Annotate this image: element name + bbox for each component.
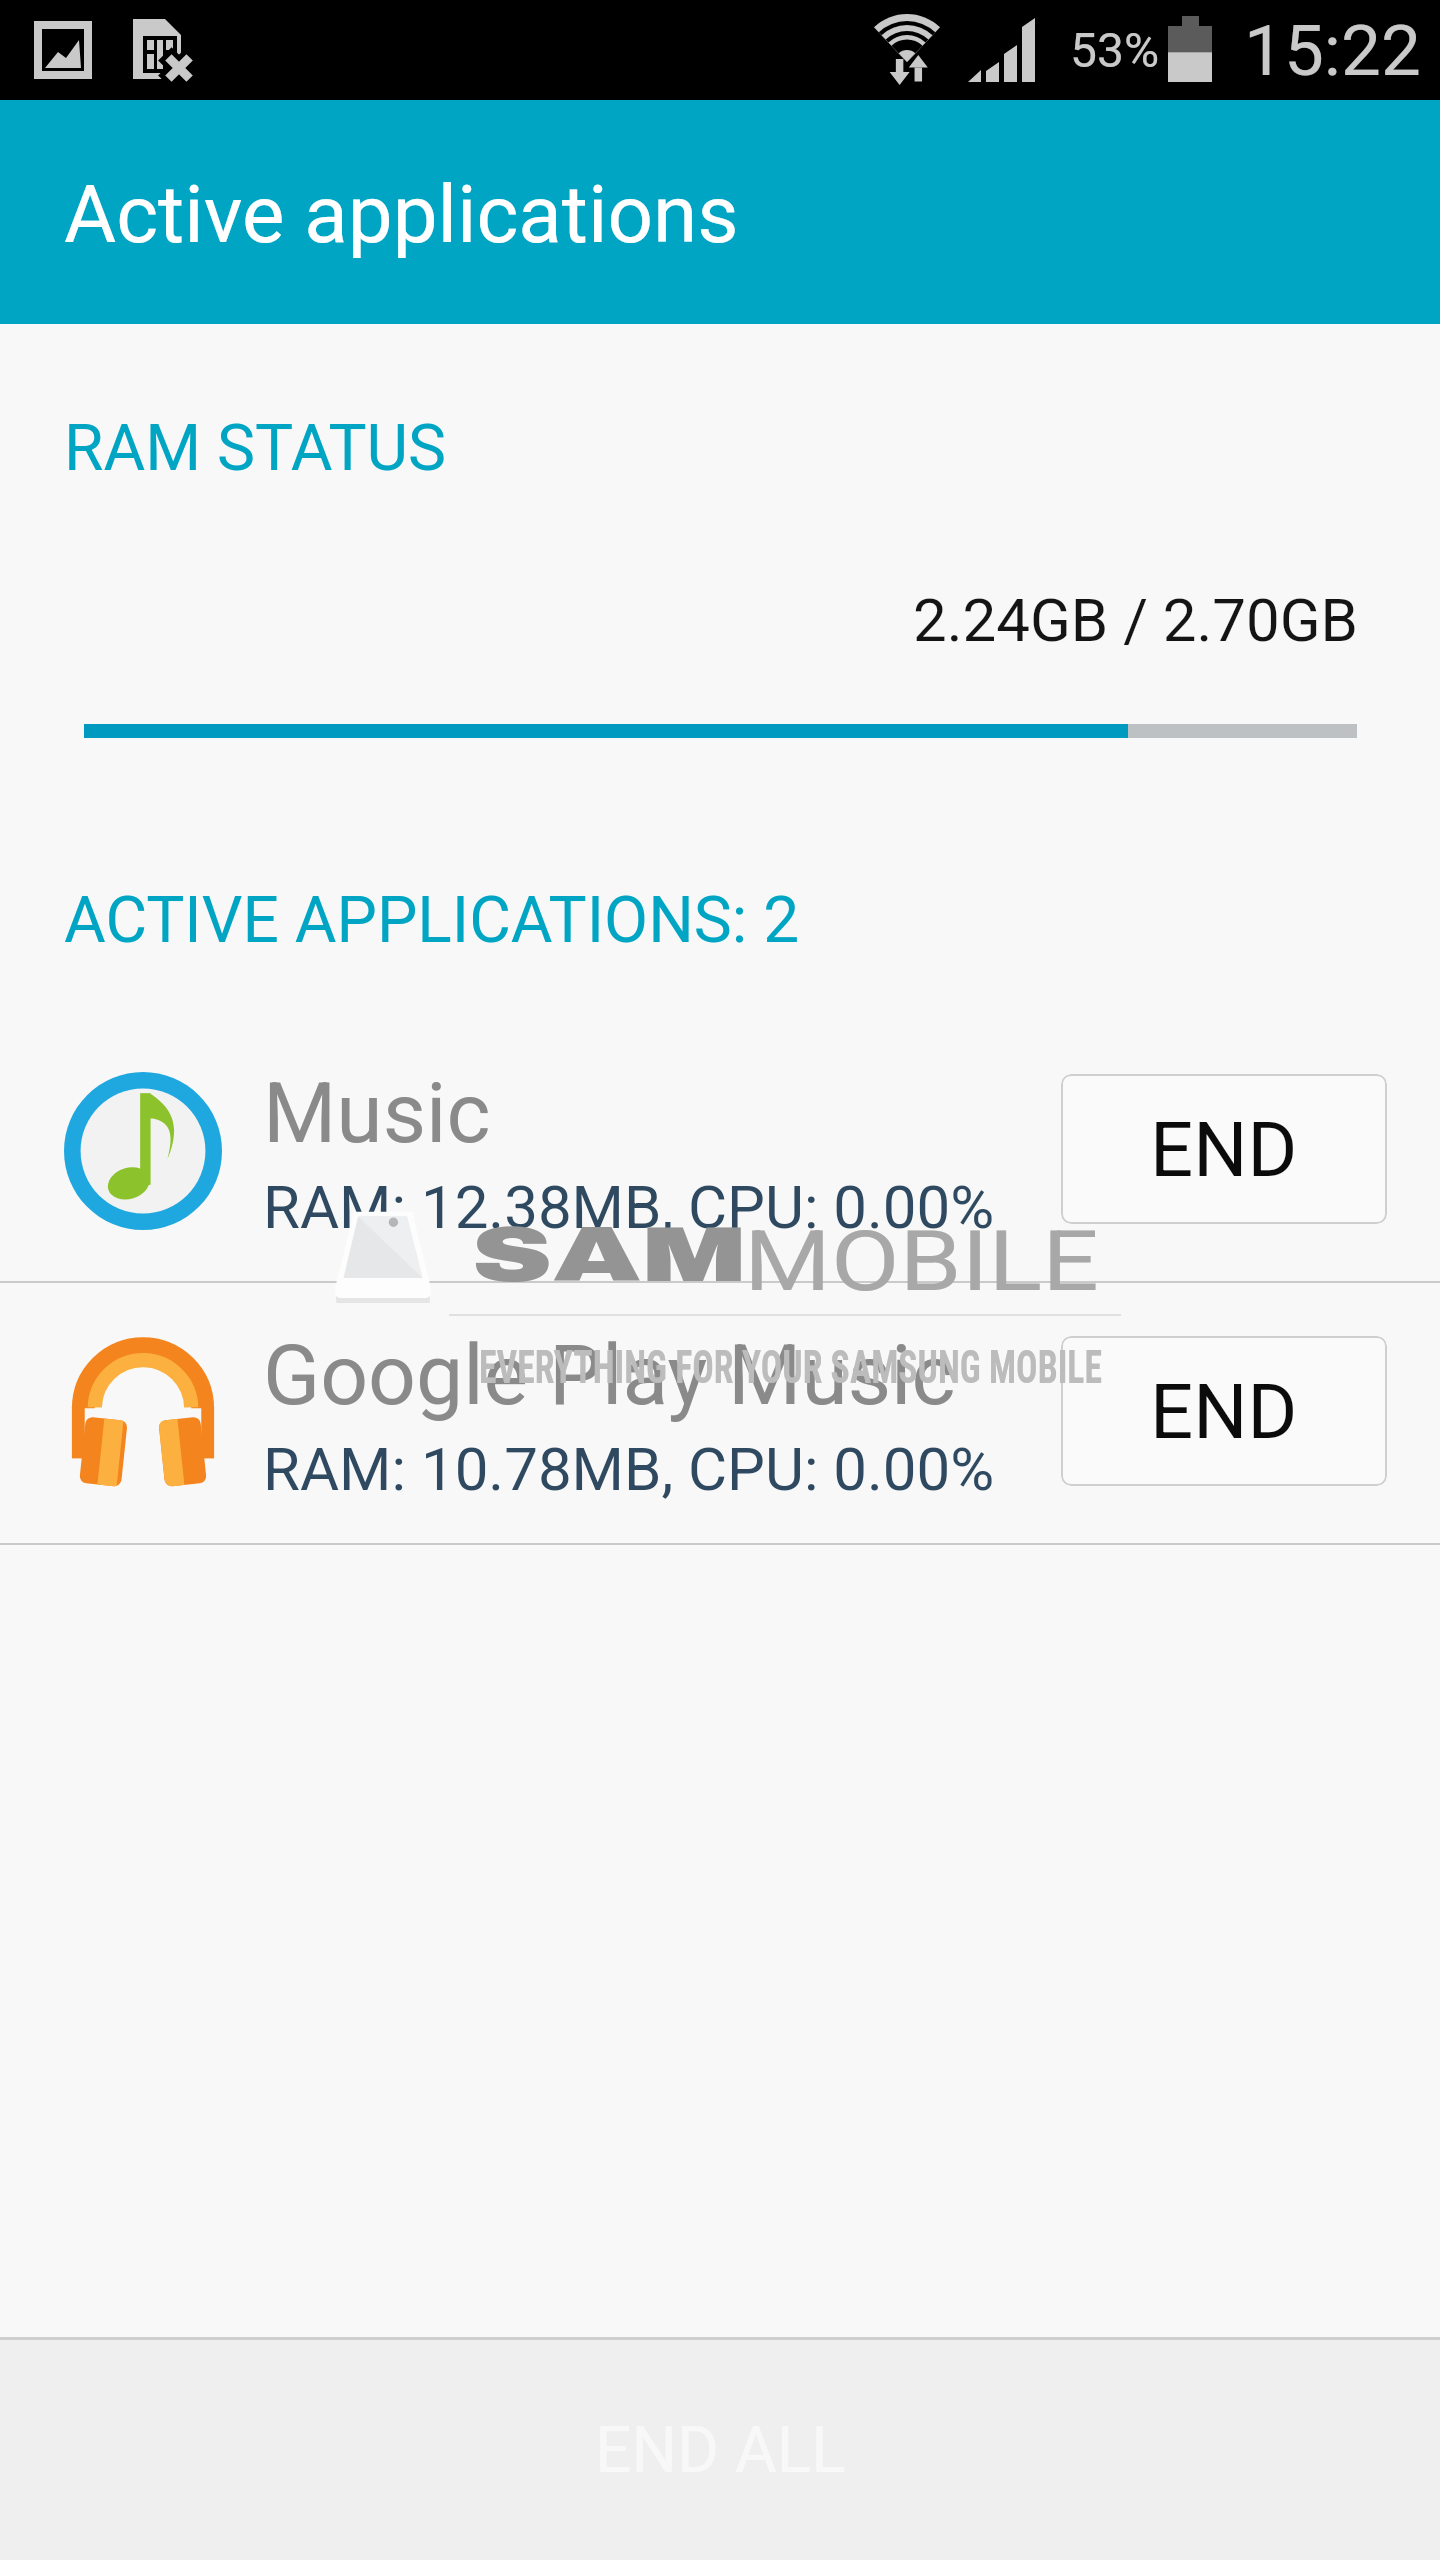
staticText: RAM: 10.78MB, CPU: 0.00% [263, 1434, 995, 1504]
staticText: ACTIVE APPLICATIONS: 2 [64, 883, 800, 958]
staticText: Active applications [64, 168, 739, 262]
button[interactable]: Music [0, 1019, 1440, 1281]
other: Music [64, 1072, 222, 1230]
staticText: 2.24GB / 2.70GB [0, 585, 1358, 655]
staticText: 53% [1070, 22, 1160, 78]
button[interactable]: Google Play Music [0, 1281, 1440, 1543]
staticText: 15:22 [1244, 9, 1421, 92]
staticText: Music [263, 1064, 491, 1162]
button[interactable]: END [1061, 1336, 1387, 1486]
other: Google Play Music [64, 1334, 222, 1492]
staticText: EVERYTHING FOR YOUR SAMSUNG MOBILE [479, 1339, 1102, 1394]
staticText: SAM [471, 1213, 748, 1298]
button[interactable]: END [1061, 1074, 1387, 1224]
staticText: RAM: 12.38MB, CPU: 0.00% [263, 1172, 995, 1242]
staticText: END [1150, 1105, 1298, 1194]
staticText: END ALL [595, 2413, 846, 2488]
staticText: Google Play Music [263, 1326, 956, 1424]
staticText: END [1150, 1367, 1298, 1456]
staticText: MOBILE [744, 1213, 1099, 1310]
staticText: RAM STATUS [64, 411, 447, 486]
